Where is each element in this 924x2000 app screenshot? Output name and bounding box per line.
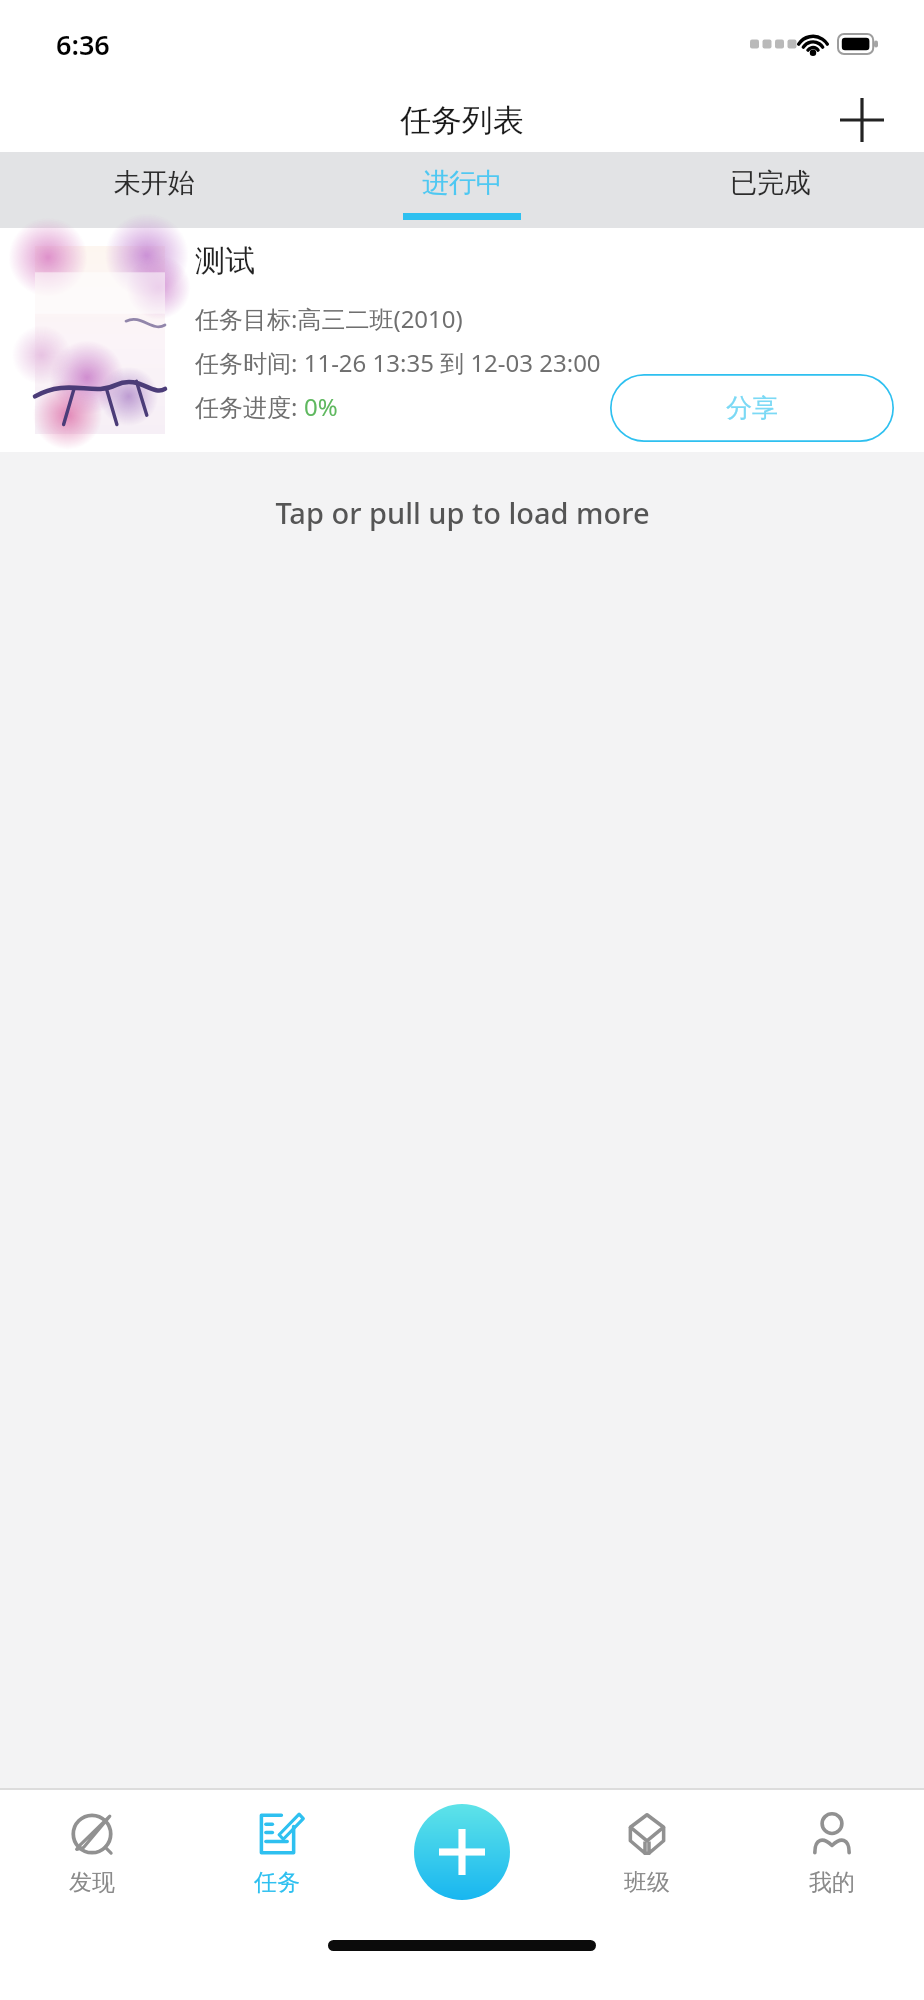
staticText: 任务 [254, 1868, 300, 1897]
staticText: 任务列表 [400, 101, 524, 140]
staticText: 班级 [624, 1868, 670, 1897]
button[interactable]: Discover [0, 1790, 184, 1922]
staticText: 分享 [726, 392, 778, 425]
button[interactable]: Profile [739, 1790, 924, 1922]
button[interactable]: 未开始 [0, 152, 308, 228]
staticText: 任务进度: [195, 390, 304, 423]
button[interactable]: Tap or pull up to load more [0, 452, 924, 572]
staticText: 未开始 [114, 166, 195, 200]
button[interactable]: Tasks [184, 1790, 369, 1922]
staticText: 任务目标:高三二班(2010) [195, 302, 463, 335]
staticText: 0% [304, 390, 338, 423]
button[interactable]: 分享 [610, 374, 894, 442]
button[interactable]: 进行中 [308, 152, 616, 228]
staticText: 进行中 [422, 166, 503, 200]
button[interactable]: Add task [414, 1804, 510, 1900]
staticText: 任务时间: 11-26 13:35 到 12-03 23:00 [195, 346, 601, 379]
staticText: 发现 [69, 1868, 115, 1897]
button[interactable]: Add [830, 88, 894, 152]
staticText: 已完成 [730, 166, 811, 200]
staticText: 我的 [809, 1868, 855, 1897]
staticText: Tap or pull up to load more [275, 493, 650, 532]
button[interactable]: Class [554, 1790, 739, 1922]
button[interactable]: 已完成 [616, 152, 924, 228]
staticText: 6:36 [56, 26, 110, 63]
staticText: 测试 [195, 242, 255, 280]
